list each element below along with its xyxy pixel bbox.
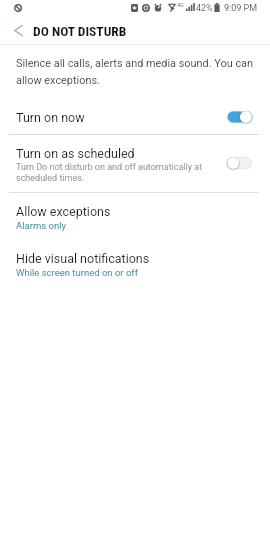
staticText: Turn Do not disturb on and off automatic… (16, 162, 208, 184)
button[interactable]: Turn on now (0, 103, 270, 131)
staticText: DO NOT DISTURB (33, 23, 127, 39)
staticText: Alarms only (16, 220, 66, 231)
staticText: Silence all calls, alerts and media soun… (16, 57, 254, 87)
button[interactable]: Allow exceptions (0, 200, 270, 240)
staticText: 42% (196, 3, 213, 14)
button[interactable]: Turn off (227, 109, 253, 125)
staticText: While screen turned on or off (16, 267, 138, 278)
staticText: 4G (177, 2, 184, 8)
button[interactable]: Turn on as scheduled (0, 138, 270, 186)
staticText: 9:09 PM (224, 3, 258, 14)
staticText: Allow exceptions (16, 204, 111, 219)
button[interactable]: Back (4, 17, 32, 44)
staticText: Turn on now (16, 110, 85, 125)
staticText: Turn on as scheduled (16, 146, 135, 161)
button[interactable]: Turn on (226, 155, 252, 171)
button[interactable]: Hide visual notifications (0, 247, 270, 287)
staticText: Hide visual notifications (16, 251, 150, 266)
